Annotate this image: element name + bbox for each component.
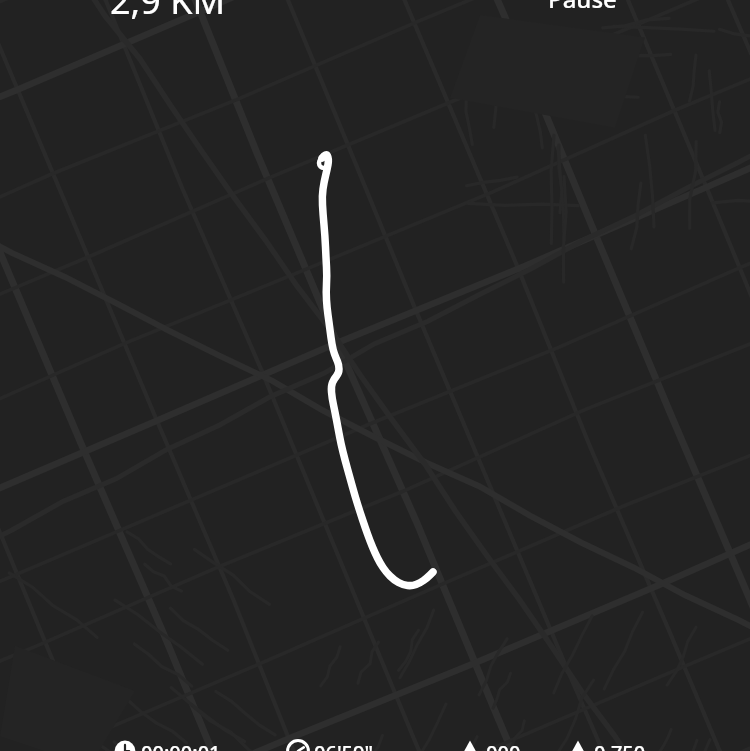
button[interactable]: Calories	[565, 738, 673, 751]
staticText: 00:00:01	[141, 739, 221, 751]
button[interactable]: Elevation	[457, 738, 565, 751]
button[interactable]: Pause	[548, 0, 658, 14]
staticText: 2,9 KM	[110, 0, 226, 20]
staticText: 000	[486, 739, 521, 751]
staticText: Pause	[548, 0, 617, 14]
button[interactable]: Duration	[112, 738, 220, 751]
staticText: 06'59"	[314, 739, 374, 751]
staticText: 0.750	[594, 739, 646, 751]
button[interactable]: Pace	[285, 738, 393, 751]
button[interactable]: 2,9 KM	[110, 0, 300, 20]
